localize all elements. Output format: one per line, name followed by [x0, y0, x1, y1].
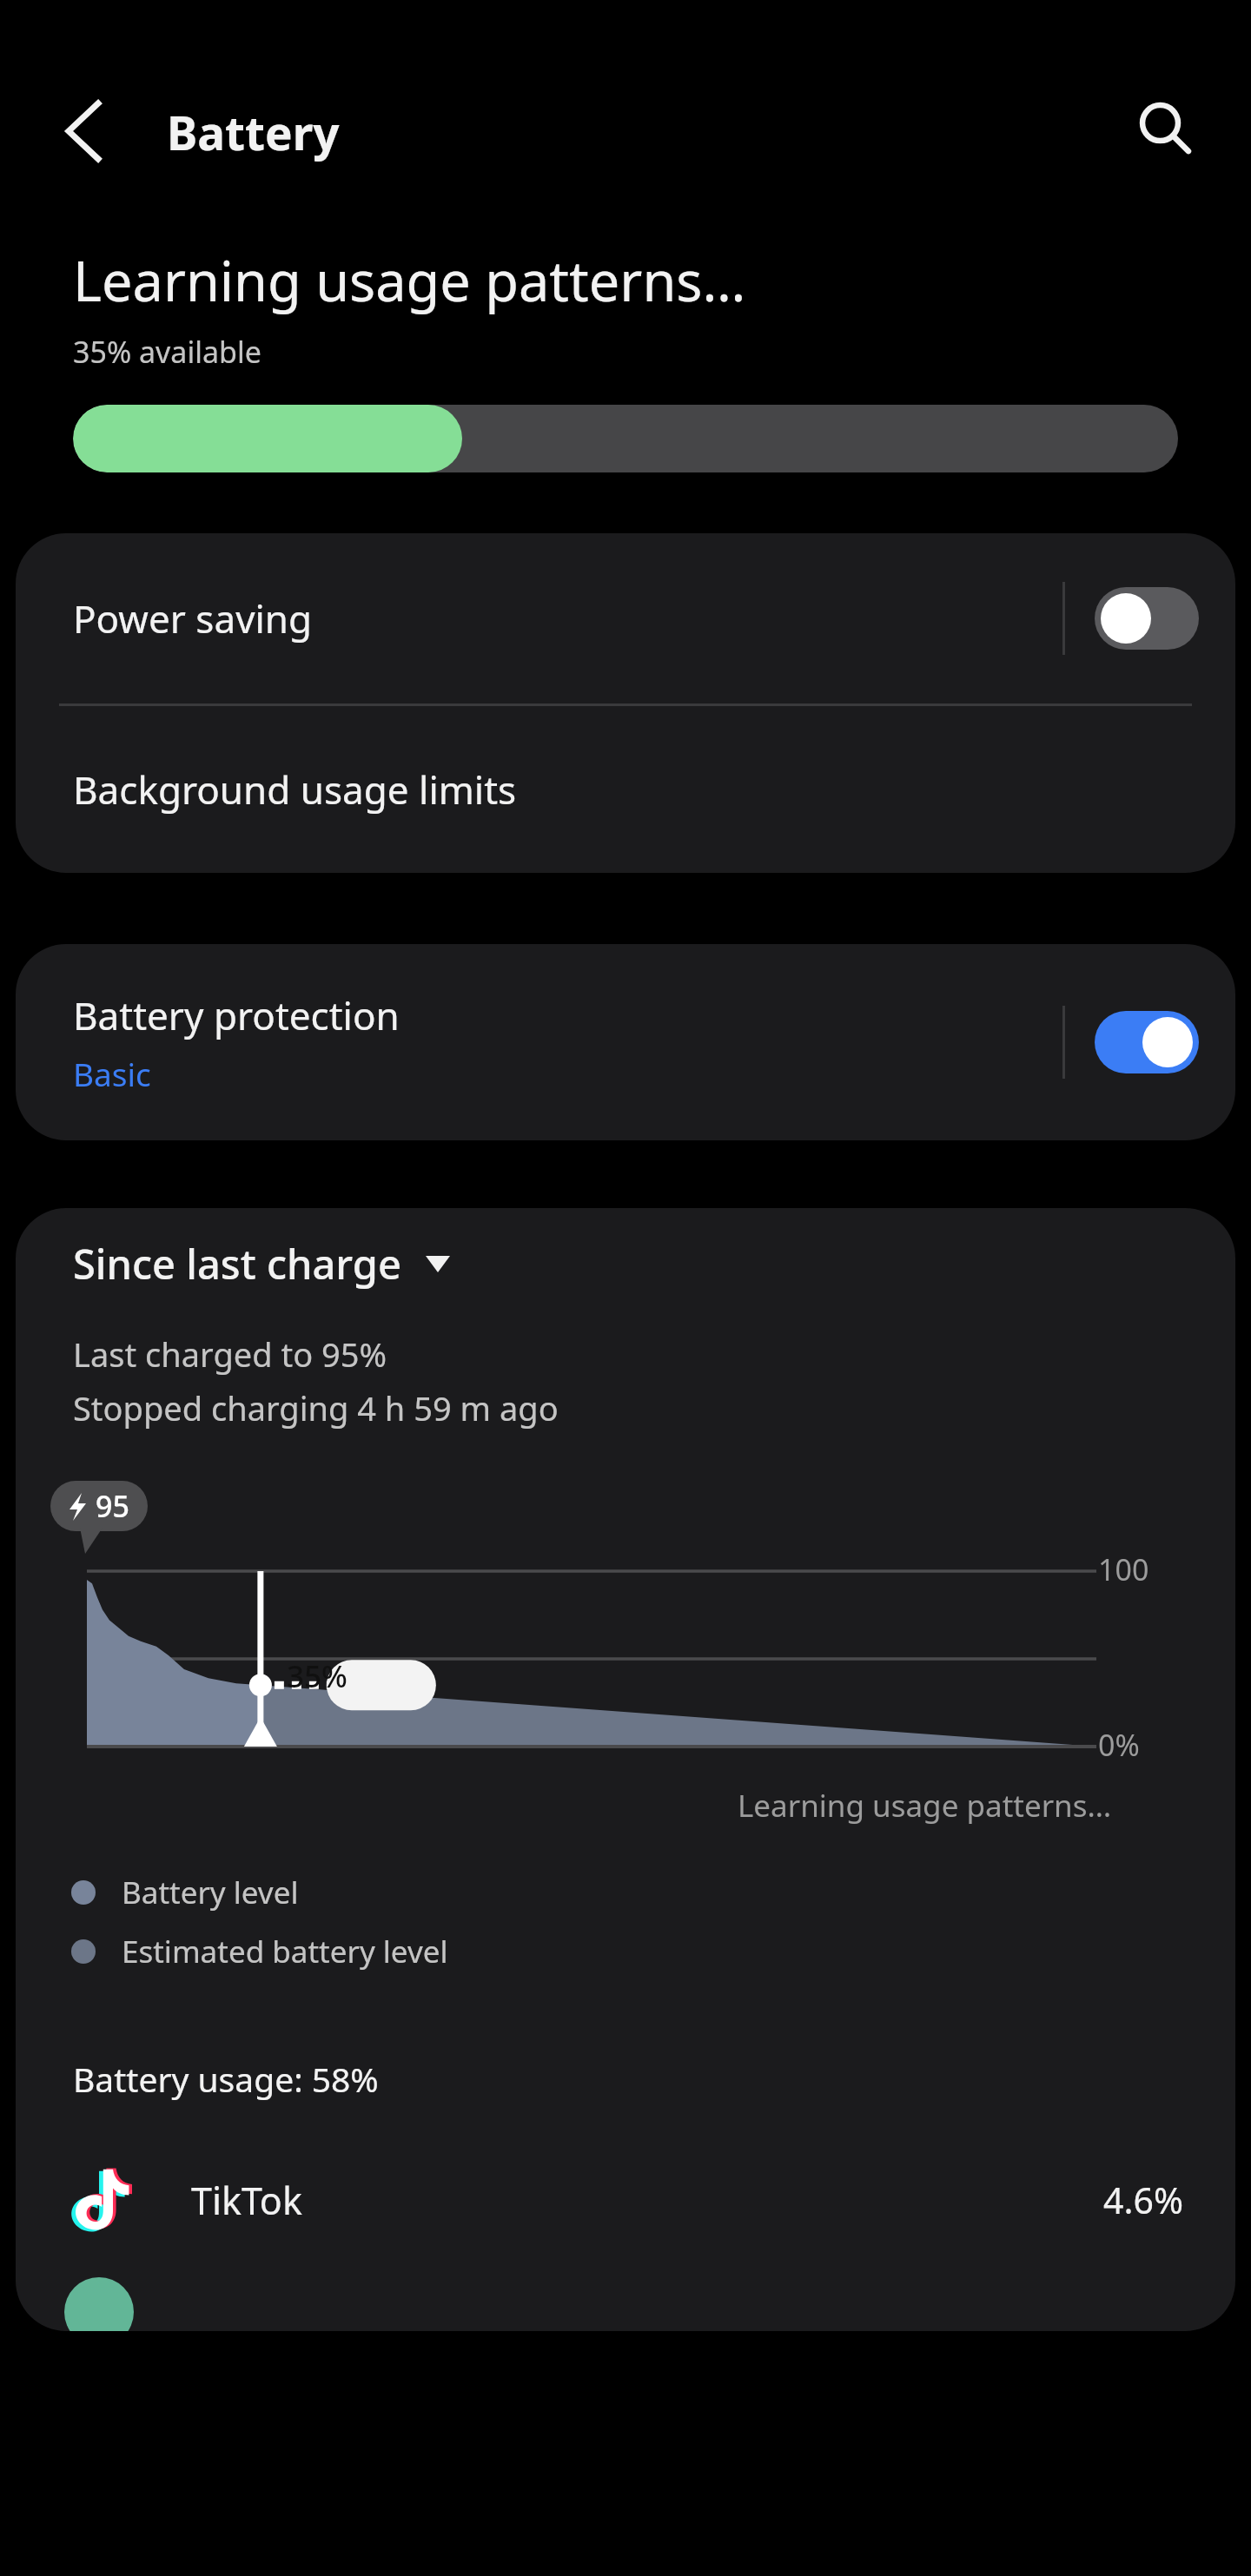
button[interactable] — [16, 2262, 1235, 2331]
button[interactable]: Battery protection on — [1095, 1011, 1199, 1073]
staticText: 4.6% — [1103, 2176, 1183, 2224]
staticText: Learning usage patterns… — [738, 1785, 1112, 1826]
staticText: Estimated battery level — [122, 1931, 448, 1972]
staticText: Background usage limits — [73, 763, 517, 816]
button[interactable]: Battery protection — [16, 944, 1062, 1140]
staticText: Power saving — [73, 592, 313, 644]
staticText: Stopped charging 4 h 59 m ago — [73, 1385, 559, 1430]
button[interactable]: Since last charge — [16, 1208, 1235, 1319]
staticText: Since last charge — [73, 1236, 401, 1291]
staticText: 35% — [287, 1655, 347, 1697]
staticText: Battery level — [122, 1872, 299, 1913]
staticText: 35% available — [73, 332, 261, 372]
button[interactable]: Power saving off — [1095, 587, 1199, 650]
staticText: Battery usage: 58% — [73, 2056, 379, 2102]
button[interactable]: Power saving — [16, 533, 1062, 703]
staticText: TikTok — [191, 2175, 302, 2226]
staticText: 95 — [96, 1486, 129, 1526]
button[interactable]: TikTok — [16, 2138, 1235, 2262]
staticText: Basic — [73, 1052, 151, 1095]
staticText: Last charged to 95% — [73, 1331, 387, 1377]
staticText: Battery protection — [73, 989, 400, 1041]
staticText: Battery — [167, 101, 340, 163]
staticText: 0% — [1098, 1725, 1140, 1765]
button[interactable]: Background usage limits — [16, 706, 1235, 873]
staticText: Learning usage patterns… — [73, 243, 746, 318]
staticText: 100 — [1098, 1549, 1149, 1589]
button[interactable]: Back — [43, 92, 122, 170]
button[interactable]: Search — [1119, 83, 1209, 174]
